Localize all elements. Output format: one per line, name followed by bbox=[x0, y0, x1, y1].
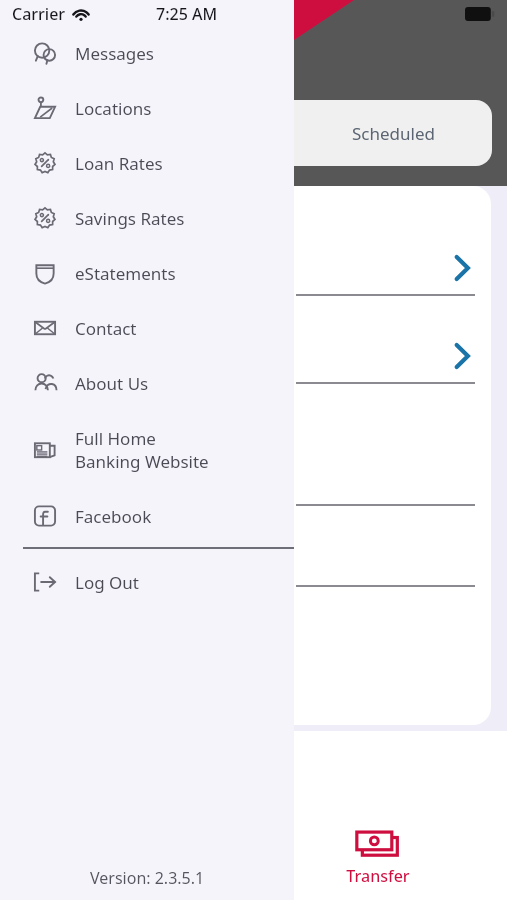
button[interactable]: Transfer bbox=[330, 828, 425, 887]
staticText: Scheduled bbox=[352, 122, 435, 145]
button[interactable]: Open item bbox=[294, 336, 491, 376]
staticText: Log Out bbox=[75, 571, 139, 594]
staticText: Contact bbox=[75, 317, 137, 340]
button[interactable]: Facebook bbox=[0, 493, 294, 539]
button[interactable]: Log Out bbox=[0, 559, 294, 605]
button[interactable]: Locations bbox=[0, 85, 294, 131]
button[interactable]: Contact bbox=[0, 305, 294, 351]
staticText: Carrier bbox=[12, 3, 66, 25]
staticText: Version: 2.3.5.1 bbox=[90, 867, 205, 889]
staticText: About Us bbox=[75, 372, 149, 395]
button[interactable]: Savings Rates bbox=[0, 195, 294, 241]
button[interactable]: Scheduled bbox=[294, 100, 492, 166]
staticText: Transfer bbox=[346, 865, 410, 887]
staticText: Facebook bbox=[75, 505, 152, 528]
button[interactable]: eStatements bbox=[0, 250, 294, 296]
staticText: eStatements bbox=[75, 262, 176, 285]
staticText: Locations bbox=[75, 97, 152, 120]
staticText: Full Home Banking Website bbox=[75, 427, 209, 473]
button[interactable]: Loan Rates bbox=[0, 140, 294, 186]
staticText: Loan Rates bbox=[75, 152, 163, 175]
button[interactable]: About Us bbox=[0, 360, 294, 406]
staticText: 7:25 AM bbox=[156, 3, 218, 25]
staticText: Messages bbox=[75, 42, 155, 65]
button[interactable]: Full Home Banking Website bbox=[0, 421, 294, 479]
staticText: Savings Rates bbox=[75, 207, 185, 230]
button[interactable]: Open item bbox=[294, 248, 491, 288]
button[interactable]: Messages bbox=[0, 30, 294, 76]
